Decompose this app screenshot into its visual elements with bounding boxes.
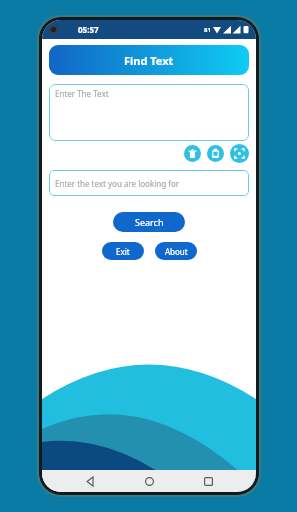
button[interactable]: Recents <box>197 470 219 492</box>
button[interactable]: Paste <box>207 145 224 162</box>
staticText: Exit <box>116 246 130 257</box>
button[interactable]: Enter The Text <box>49 84 249 141</box>
staticText: Enter the text you are looking for <box>55 178 180 189</box>
staticText: Search <box>135 216 164 228</box>
staticText: Find Text <box>124 53 174 68</box>
staticText: About <box>165 246 188 257</box>
staticText: 81 <box>204 26 211 34</box>
staticText: Enter The Text <box>55 88 109 99</box>
button[interactable]: Select all <box>230 144 249 163</box>
button[interactable]: Search <box>113 212 185 232</box>
button[interactable]: Enter the text you are looking for <box>49 170 249 196</box>
button[interactable]: About <box>155 242 197 260</box>
button[interactable]: Exit <box>102 242 144 260</box>
button[interactable]: Home <box>138 470 160 492</box>
staticText: 05:57 <box>78 24 99 35</box>
button[interactable]: Find Text <box>49 45 249 75</box>
button[interactable]: Back <box>79 470 101 492</box>
button[interactable]: Clear text <box>184 145 201 162</box>
